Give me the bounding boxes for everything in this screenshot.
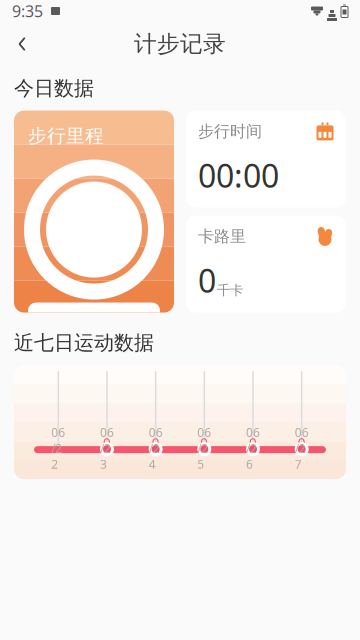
staticText: 06/22: [51, 424, 65, 472]
staticText: 今日数据: [14, 76, 94, 101]
staticText: 9:35: [12, 0, 43, 22]
staticText: 0: [200, 433, 208, 451]
staticText: 步行里程: [28, 125, 104, 147]
staticText: 0: [198, 259, 216, 302]
staticText: 卡路里: [198, 227, 246, 246]
button[interactable]: 步行时间: [186, 111, 346, 208]
staticText: 近七日运动数据: [14, 331, 154, 355]
button[interactable]: 返回: [0, 24, 44, 64]
staticText: 06/23: [100, 424, 114, 472]
staticText: [57, 433, 60, 451]
staticText: 0: [298, 433, 306, 451]
staticText: 0: [152, 433, 160, 451]
staticText: 0: [103, 433, 111, 451]
staticText: 千卡: [217, 282, 243, 299]
button[interactable]: 卡路里: [186, 216, 346, 313]
button[interactable]: 步行里程: [14, 111, 174, 313]
staticText: 06/26: [246, 424, 260, 472]
staticText: 06/25: [197, 424, 211, 472]
staticText: 步行时间: [198, 122, 262, 141]
staticText: 0: [249, 433, 257, 451]
staticText: 06/24: [149, 424, 163, 472]
staticText: 计步记录: [134, 30, 226, 58]
staticText: 06/27: [295, 424, 309, 472]
staticText: 00:00: [198, 154, 279, 197]
